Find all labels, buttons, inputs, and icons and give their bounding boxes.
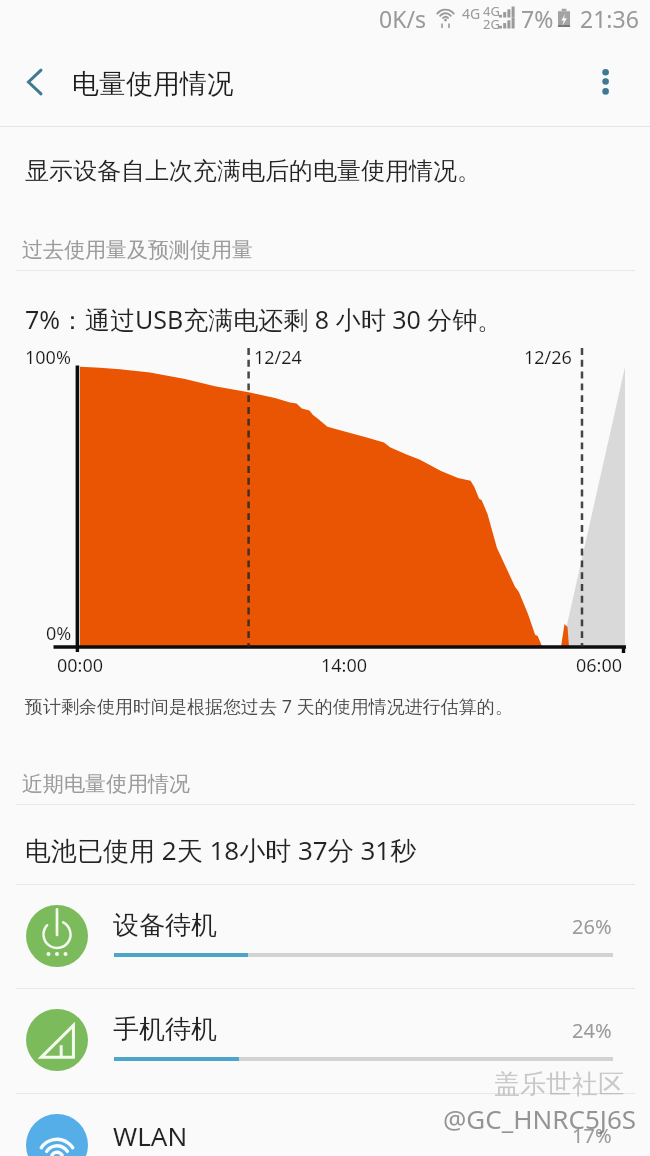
staticText: 21:36	[580, 3, 639, 34]
staticText: 12/24	[254, 345, 302, 370]
staticText: 盖乐世社区	[494, 1068, 624, 1101]
button[interactable]: Back	[4, 56, 56, 108]
staticText: WLAN	[113, 1118, 188, 1153]
staticText: 26%	[572, 913, 612, 940]
staticText: 预计剩余使用时间是根据您过去 7 天的使用情况进行估算的。	[25, 694, 513, 719]
staticText: 2G	[483, 15, 500, 33]
staticText: 06:00	[576, 653, 623, 678]
staticText: 7%	[521, 3, 554, 34]
button[interactable]: 设备待机	[0, 884, 650, 988]
staticText: 设备待机	[113, 909, 217, 942]
staticText: 7%：通过USB充满电还剩 8 小时 30 分钟。	[25, 302, 503, 336]
staticText: 0%	[46, 621, 72, 646]
staticText: 17%	[572, 1122, 612, 1149]
staticText: 电量使用情况	[72, 67, 234, 101]
staticText: 12/26	[524, 345, 572, 370]
staticText: 显示设备自上次充满电后的电量使用情况。	[25, 156, 481, 186]
staticText: 14:00	[321, 653, 368, 678]
button[interactable]: 手机待机	[0, 988, 650, 1092]
staticText: 4G	[462, 4, 481, 23]
staticText: 100%	[25, 345, 71, 370]
staticText: 过去使用量及预测使用量	[22, 237, 253, 263]
staticText: 电池已使用 2天 18小时 37分 31秒	[25, 832, 417, 868]
staticText: 24%	[572, 1017, 612, 1044]
button[interactable]: WLAN	[0, 1093, 650, 1156]
staticText: 0K/s	[379, 3, 426, 34]
staticText: 近期电量使用情况	[22, 771, 190, 797]
staticText: 00:00	[57, 653, 104, 678]
button[interactable]: More options	[580, 56, 632, 108]
staticText: @GC_HNRC5J6S	[443, 1101, 637, 1136]
staticText: 4G	[483, 2, 500, 20]
staticText: 手机待机	[113, 1013, 217, 1046]
